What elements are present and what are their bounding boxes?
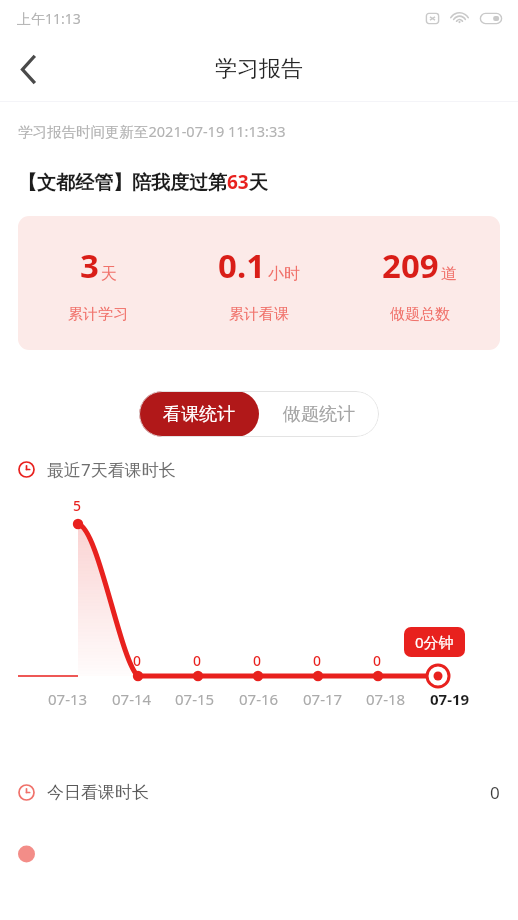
staticText: 累计学习 bbox=[68, 305, 128, 324]
staticText: 天 bbox=[101, 264, 117, 284]
staticText: 最近7天看课时长 bbox=[47, 458, 176, 481]
staticText: 07-19 bbox=[430, 689, 470, 709]
staticText: 0 bbox=[193, 651, 202, 670]
staticText: 道 bbox=[441, 264, 457, 284]
staticText: 做题统计 bbox=[283, 403, 355, 426]
staticText: 07-16 bbox=[239, 689, 279, 709]
button[interactable]: 做题统计 bbox=[259, 391, 379, 437]
staticText: 做题总数 bbox=[390, 305, 450, 324]
staticText: 209 bbox=[382, 243, 439, 288]
staticText: 【文都经管】陪我度过第63天 bbox=[18, 169, 268, 195]
staticText: 学习报告时间更新至2021-07-19 11:13:33 bbox=[18, 121, 286, 141]
staticText: 0分钟 bbox=[415, 632, 454, 652]
staticText: 0 bbox=[490, 781, 500, 804]
staticText: 学习报告 bbox=[215, 55, 303, 83]
staticText: 5 bbox=[73, 496, 82, 515]
button[interactable]: 今日看课时长 bbox=[0, 775, 518, 810]
button[interactable]: Back bbox=[0, 41, 56, 97]
staticText: 07-14 bbox=[112, 689, 152, 709]
staticText: 看课统计 bbox=[163, 403, 235, 426]
staticText: 小时 bbox=[268, 264, 300, 284]
staticText: 今日看课时长 bbox=[47, 782, 149, 803]
staticText: 07-18 bbox=[366, 689, 406, 709]
staticText: 上午11:13 bbox=[17, 9, 81, 28]
staticText: 0 bbox=[313, 651, 322, 670]
staticText: 3 bbox=[80, 243, 99, 288]
staticText: 07-15 bbox=[175, 689, 215, 709]
staticText: 累计看课 bbox=[229, 305, 289, 324]
staticText: 0 bbox=[373, 651, 382, 670]
button[interactable]: 看课统计 bbox=[139, 391, 259, 437]
staticText: 0 bbox=[133, 651, 142, 670]
staticText: 0.1 bbox=[218, 243, 266, 288]
staticText: 0 bbox=[253, 651, 262, 670]
staticText: 07-17 bbox=[303, 689, 343, 709]
staticText: 07-13 bbox=[48, 689, 88, 709]
